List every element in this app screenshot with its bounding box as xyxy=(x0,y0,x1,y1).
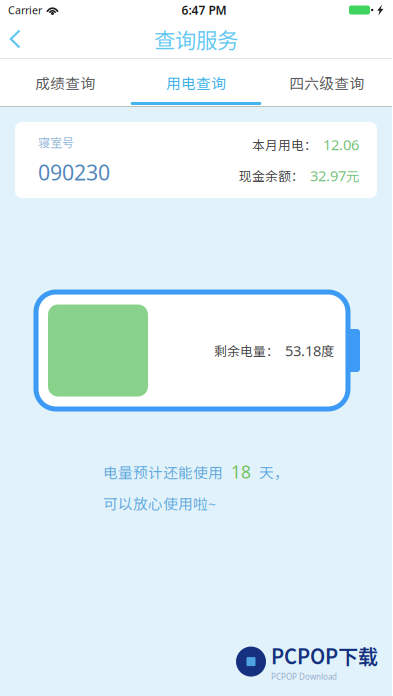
staticText: Carrier xyxy=(8,3,42,17)
staticText: 寝室号 xyxy=(38,133,74,151)
staticText: 32.97 xyxy=(310,165,346,185)
button[interactable]: 成绩查询 xyxy=(0,59,131,106)
staticText: 度 xyxy=(321,341,334,360)
staticText: 现金余额： xyxy=(239,166,304,185)
button[interactable]: Back xyxy=(0,20,37,58)
staticText: 电量预计还能使用 xyxy=(103,461,223,482)
staticText: 12.06 xyxy=(323,134,359,154)
staticText: 四六级查询 xyxy=(289,72,364,93)
staticText: 天， xyxy=(259,461,289,482)
staticText: 查询服务 xyxy=(154,24,238,54)
staticText: 元 xyxy=(346,166,359,185)
button[interactable]: 用电查询 xyxy=(131,59,261,106)
staticText: 用电查询 xyxy=(166,72,226,93)
staticText: 本月用电： xyxy=(252,135,317,154)
staticText: 53.18 xyxy=(285,340,321,360)
staticText: 剩余电量： xyxy=(214,341,279,360)
staticText: PCPOP Download xyxy=(271,671,337,682)
button[interactable]: 四六级查询 xyxy=(261,59,392,106)
staticText: 18 xyxy=(231,460,251,484)
staticText: PCPOP下载 xyxy=(271,641,378,670)
staticText: 成绩查询 xyxy=(35,72,95,93)
staticText: 6:47 PM xyxy=(181,2,226,18)
staticText: 可以放心使用啦~ xyxy=(103,493,216,514)
staticText: 090230 xyxy=(38,158,110,187)
